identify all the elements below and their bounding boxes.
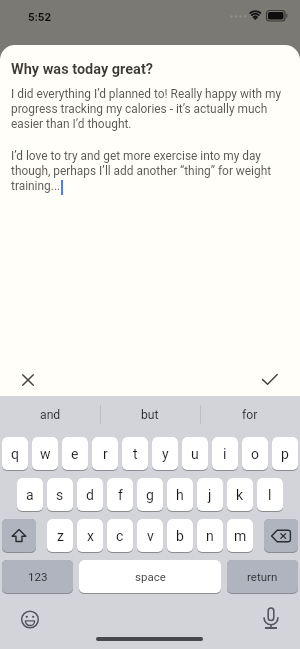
staticText: return (247, 570, 278, 583)
staticText: f (118, 487, 123, 503)
staticText: 123 (28, 570, 48, 583)
staticText: a (26, 487, 34, 503)
staticText: h (176, 487, 184, 503)
staticText: I did everything I’d planned to! Really … (11, 87, 282, 131)
button[interactable]: 123 (2, 560, 73, 593)
button[interactable]: y (152, 437, 178, 470)
staticText: w (40, 446, 51, 462)
staticText: d (86, 487, 94, 503)
button[interactable]: k (227, 478, 253, 511)
staticText: m (234, 528, 247, 544)
staticText: g (146, 487, 154, 503)
staticText: j (208, 487, 212, 503)
staticText: k (236, 487, 244, 503)
button[interactable] (264, 519, 298, 552)
button[interactable]: l (257, 478, 283, 511)
staticText: y (162, 446, 169, 462)
staticText: s (56, 487, 64, 503)
button[interactable]: s (47, 478, 73, 511)
staticText: x (87, 528, 94, 544)
staticText: u (191, 446, 199, 462)
button[interactable]: p (272, 437, 298, 470)
staticText: c (116, 528, 124, 544)
staticText: q (11, 446, 19, 462)
staticText: e (71, 446, 79, 462)
staticText: r (103, 446, 108, 462)
button[interactable]: return (227, 560, 298, 593)
staticText: t (133, 446, 138, 462)
staticText: z (57, 528, 64, 544)
button[interactable]: x (77, 519, 103, 552)
button[interactable] (259, 368, 281, 390)
button[interactable]: r (92, 437, 118, 470)
button[interactable] (18, 370, 39, 391)
staticText: i (223, 446, 227, 462)
button[interactable]: e (62, 437, 88, 470)
staticText: space (135, 570, 166, 583)
button[interactable]: d (77, 478, 103, 511)
button[interactable]: a (17, 478, 43, 511)
button[interactable]: c (107, 519, 133, 552)
staticText: l (268, 487, 272, 503)
staticText: v (147, 528, 154, 544)
button[interactable] (253, 600, 289, 636)
staticText: o (251, 446, 259, 462)
button[interactable]: n (197, 519, 223, 552)
staticText: and (40, 408, 61, 422)
button[interactable]: f (107, 478, 133, 511)
staticText: p (281, 446, 289, 462)
button[interactable]: j (197, 478, 223, 511)
button[interactable]: v (137, 519, 163, 552)
button[interactable]: m (227, 519, 253, 552)
staticText: Why was today great? (11, 61, 154, 78)
button[interactable]: but (100, 403, 200, 427)
button[interactable]: u (182, 437, 208, 470)
button[interactable] (2, 519, 36, 552)
button[interactable]: h (167, 478, 193, 511)
button[interactable]: space (79, 560, 221, 593)
button[interactable]: o (242, 437, 268, 470)
staticText: b (176, 528, 184, 544)
button[interactable]: i (212, 437, 238, 470)
button[interactable]: b (167, 519, 193, 552)
staticText: I’d love to try and get more exercise in… (11, 149, 272, 193)
button[interactable]: for (200, 403, 300, 427)
button[interactable]: z (47, 519, 73, 552)
button[interactable]: q (2, 437, 28, 470)
button[interactable]: g (137, 478, 163, 511)
staticText: for (242, 408, 258, 422)
staticText: n (206, 528, 214, 544)
staticText: 5:52 (28, 10, 52, 23)
staticText: but (141, 408, 159, 422)
button[interactable]: t (122, 437, 148, 470)
button[interactable]: w (32, 437, 58, 470)
button[interactable] (12, 601, 48, 637)
button[interactable]: and (0, 403, 100, 427)
